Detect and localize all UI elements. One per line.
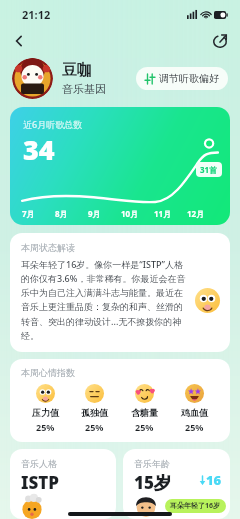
button[interactable] <box>12 58 53 99</box>
staticText: 25% <box>185 421 204 433</box>
staticText: 耳朵年轻了16岁 <box>170 501 221 511</box>
staticText: 25% <box>85 421 104 433</box>
staticText: 本周状态解读 <box>21 242 75 253</box>
staticText: 近6月听歌总数 <box>23 118 83 130</box>
staticText: 34 <box>23 131 55 168</box>
button[interactable]: 本周状态解读 <box>10 233 230 352</box>
staticText: 豆咖 <box>62 61 92 80</box>
staticText: 含糖量 <box>131 407 158 418</box>
staticText: 12月 <box>187 208 205 219</box>
button[interactable]: 音乐年龄 <box>123 449 230 519</box>
staticText: 压力值 <box>32 407 59 418</box>
button[interactable]: 近6月听歌总数 <box>10 107 230 225</box>
staticText: 10月 <box>121 208 139 219</box>
button[interactable]: 调节听歌偏好 <box>136 67 228 90</box>
staticText: 25% <box>36 421 55 433</box>
staticText: 音乐年龄 <box>134 458 170 469</box>
button[interactable]: Share <box>207 28 233 54</box>
staticText: 本周心情指数 <box>21 367 75 378</box>
button[interactable]: 本周心情指数 <box>10 359 230 442</box>
staticText: ISTP <box>21 471 60 494</box>
staticText: 孤独值 <box>81 407 108 418</box>
staticText: 8月 <box>55 208 68 219</box>
staticText: 25% <box>135 421 154 433</box>
staticText: 9月 <box>88 208 101 219</box>
button[interactable]: 音乐人格 <box>10 449 116 519</box>
staticText: 11月 <box>154 208 172 219</box>
staticText: 7月 <box>22 208 35 219</box>
staticText: 鸡血值 <box>181 407 208 418</box>
staticText: 16 <box>206 471 222 489</box>
staticText: 耳朵年轻了16岁。像你一样是“ISTP”人格的你仅有3.6%，非常稀有。你最近会… <box>21 258 189 342</box>
staticText: 15岁 <box>134 471 171 494</box>
button[interactable]: Back <box>6 28 32 54</box>
staticText: 21:12 <box>22 7 51 22</box>
staticText: 31首 <box>200 164 218 175</box>
staticText: 音乐人格 <box>21 458 57 469</box>
staticText: 调节听歌偏好 <box>159 72 219 85</box>
staticText: 音乐基因 <box>62 82 106 96</box>
